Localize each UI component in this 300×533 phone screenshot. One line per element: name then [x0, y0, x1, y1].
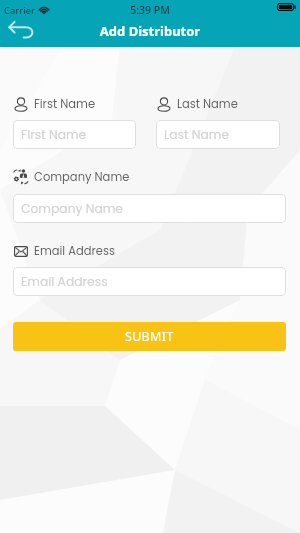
staticText: Last Name: [164, 126, 230, 143]
button[interactable]: Email Address: [13, 267, 286, 296]
button[interactable]: Last Name: [156, 120, 280, 149]
button[interactable]: Back: [4, 20, 40, 44]
staticText: 5:39 PM: [0, 3, 300, 17]
staticText: Company Name: [21, 200, 123, 217]
button[interactable]: Company Name: [13, 194, 286, 223]
staticText: First Name: [21, 126, 87, 143]
staticText: Email Address: [21, 273, 108, 290]
staticText: Company Name: [34, 169, 130, 185]
staticText: SUBMIT: [125, 328, 174, 345]
staticText: Add Distributor: [0, 22, 300, 40]
staticText: Email Address: [34, 243, 115, 259]
staticText: First Name: [34, 96, 96, 112]
staticText: Last Name: [177, 96, 238, 112]
button[interactable]: SUBMIT: [13, 322, 286, 351]
button[interactable]: First Name: [13, 120, 136, 149]
staticText: Carrier: [4, 4, 35, 17]
